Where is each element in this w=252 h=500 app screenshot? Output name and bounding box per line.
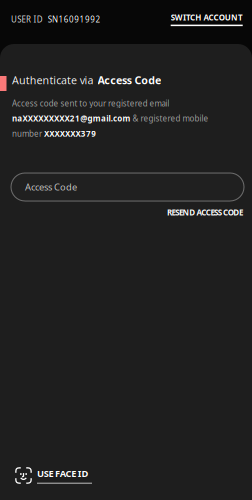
- staticText: RESEND ACCESS CODE: [167, 207, 243, 218]
- staticText: naXXXXXXXXX21@gmail.com: [12, 113, 130, 124]
- staticText: Authenticate via: [12, 73, 93, 87]
- staticText: XXXXXXX379: [44, 128, 96, 139]
- staticText: USE FACE ID: [37, 467, 88, 480]
- staticText: & registered mobile: [130, 113, 208, 124]
- button[interactable]: SWITCH ACCOUNT: [171, 12, 243, 26]
- staticText: SN16091992: [48, 14, 100, 25]
- button[interactable]: USE FACE ID: [15, 467, 92, 484]
- button[interactable]: RESEND ACCESS CODE: [167, 207, 243, 218]
- staticText: Access Code: [97, 73, 161, 87]
- staticText: Access Code: [25, 181, 77, 193]
- staticText: Access code sent to your registered emai…: [12, 98, 169, 109]
- button[interactable]: Access Code: [11, 173, 244, 201]
- staticText: SWITCH ACCOUNT: [171, 12, 243, 23]
- staticText: number: [12, 128, 44, 139]
- staticText: USER ID: [11, 14, 43, 25]
